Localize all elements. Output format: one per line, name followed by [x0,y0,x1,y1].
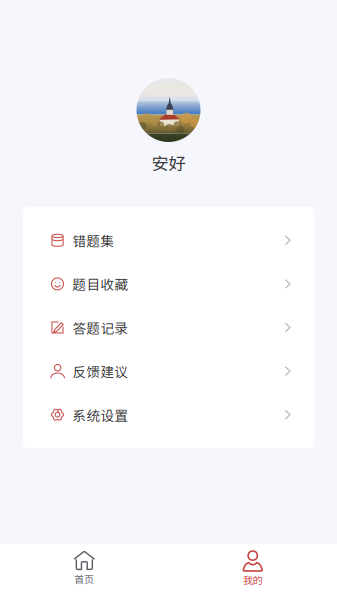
staticText: 系统设置 [72,405,128,425]
staticText: 安好 [151,150,185,175]
button[interactable]: 首页 [0,544,168,600]
staticText: 题目收藏 [72,274,128,294]
staticText: 首页 [74,572,94,586]
button[interactable]: 反馈建议 [23,349,314,393]
staticText: 反馈建议 [72,361,128,381]
button[interactable]: 题目收藏 [23,262,314,306]
button[interactable]: 系统设置 [23,393,314,436]
staticText: 答题记录 [72,318,128,337]
button[interactable]: 错题集 [23,218,314,262]
staticText: 我的 [243,572,263,587]
button[interactable]: 答题记录 [23,306,314,349]
staticText: 错题集 [72,230,114,250]
button[interactable]: 我的 [168,544,337,600]
